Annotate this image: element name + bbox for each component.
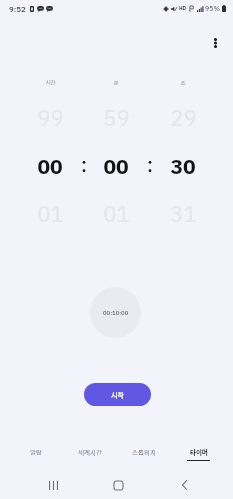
staticText: 세계시간 (78, 447, 102, 456)
staticText: 초 (180, 79, 186, 87)
staticText: 99 (37, 102, 64, 132)
button[interactable]: 시작 (84, 383, 151, 406)
staticText: 29 (170, 102, 197, 132)
staticText: 시작 (111, 390, 124, 400)
staticText: 01 (37, 198, 64, 228)
button[interactable]: 초 (162, 73, 204, 93)
staticText: 95% (205, 3, 220, 14)
button[interactable]: 00:10:00 (90, 287, 141, 338)
staticText: 분 (113, 79, 119, 87)
button[interactable]: 알람 (8, 441, 63, 463)
staticText: 01 (103, 198, 130, 228)
button[interactable]: 시간 (29, 73, 71, 93)
button[interactable]: 분 (95, 73, 137, 93)
button[interactable]: 타이머 (171, 441, 225, 463)
staticText: 시간 (45, 79, 56, 87)
staticText: 00 (103, 151, 129, 181)
button[interactable]: 세계시간 (63, 441, 117, 463)
staticText: 59 (103, 102, 130, 132)
staticText: 타이머 (190, 447, 208, 456)
button[interactable]: Back (171, 475, 197, 495)
button[interactable]: More options (202, 30, 228, 56)
button[interactable]: Recent apps (40, 475, 66, 495)
staticText: HD (179, 5, 187, 13)
button[interactable]: 스톱워치 (117, 441, 171, 463)
staticText: 스톱워치 (132, 447, 156, 456)
staticText: 00 (37, 151, 63, 181)
staticText: 9:52 (9, 3, 26, 15)
staticText: 00:10:00 (103, 308, 129, 317)
staticText: 알람 (30, 447, 42, 456)
button[interactable]: Home (105, 475, 131, 495)
staticText: 30 (170, 151, 196, 181)
staticText: 31 (170, 198, 197, 228)
